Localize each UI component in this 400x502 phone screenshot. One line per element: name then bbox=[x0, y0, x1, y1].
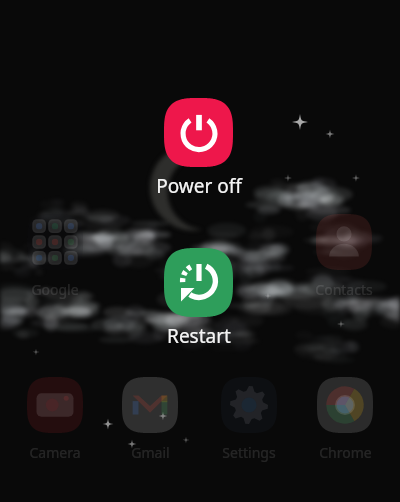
button[interactable]: Chrome bbox=[301, 377, 389, 462]
button[interactable]: Power off bbox=[144, 98, 253, 199]
button[interactable]: Camera bbox=[11, 377, 99, 462]
staticText: Camera bbox=[29, 443, 81, 462]
button[interactable]: Google bbox=[11, 214, 99, 299]
staticText: Chrome bbox=[319, 443, 372, 462]
staticText: Contacts bbox=[315, 280, 373, 299]
button[interactable]: Settings bbox=[205, 377, 293, 462]
staticText: Restart bbox=[167, 323, 231, 349]
staticText: Gmail bbox=[131, 443, 170, 462]
staticText: Power off bbox=[156, 173, 242, 199]
button[interactable]: Contacts bbox=[300, 214, 388, 299]
button[interactable]: Restart bbox=[144, 248, 253, 349]
staticText: Google bbox=[31, 280, 79, 299]
button[interactable]: Gmail bbox=[106, 377, 194, 462]
staticText: Settings bbox=[222, 443, 276, 462]
